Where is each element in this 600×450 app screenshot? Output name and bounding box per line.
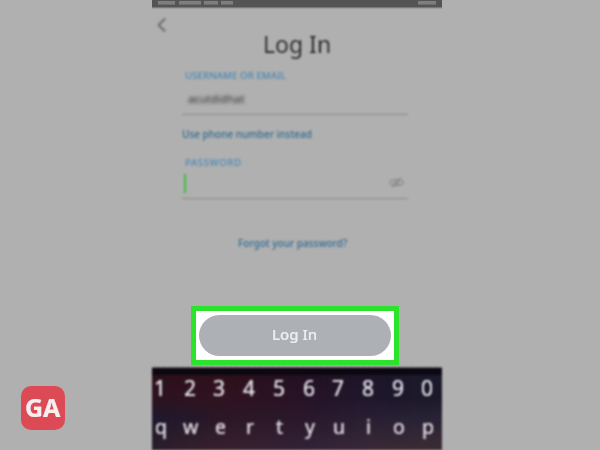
staticText: Log In: [272, 324, 318, 344]
button[interactable]: 0: [413, 370, 441, 407]
staticText: GA: [25, 390, 61, 424]
staticText: e: [215, 413, 226, 440]
button[interactable]: Forgot your password?: [238, 236, 348, 250]
button[interactable]: o: [385, 407, 413, 445]
button[interactable]: w: [177, 407, 205, 445]
button[interactable]: 1: [146, 370, 174, 407]
staticText: t: [276, 413, 284, 440]
button[interactable]: 6: [295, 370, 323, 407]
button[interactable]: p: [414, 407, 442, 445]
staticText: 8: [362, 374, 375, 403]
button[interactable]: i: [355, 407, 383, 445]
staticText: i: [366, 413, 372, 440]
button[interactable]: 3: [205, 370, 233, 407]
button[interactable]: Log In: [199, 315, 391, 356]
staticText: 9: [392, 374, 405, 403]
button[interactable]: u: [325, 407, 353, 445]
button[interactable]: 8: [354, 370, 382, 407]
staticText: 2: [184, 374, 197, 403]
button[interactable]: 7: [324, 370, 352, 407]
button[interactable]: 5: [265, 370, 293, 407]
staticText: q: [155, 413, 167, 440]
staticText: 6: [303, 374, 316, 403]
button[interactable]: Show password: [385, 171, 407, 193]
button[interactable]: 4: [235, 370, 263, 407]
button[interactable]: y: [296, 407, 324, 445]
staticText: acutdidhat: [188, 91, 245, 106]
staticText: 0: [421, 374, 434, 403]
staticText: w: [183, 413, 199, 440]
staticText: r: [246, 413, 255, 440]
staticText: 7: [332, 374, 345, 403]
button[interactable]: GA logo: [21, 386, 65, 430]
button[interactable]: r: [236, 407, 264, 445]
button[interactable]: Back: [150, 13, 174, 37]
staticText: o: [393, 413, 405, 440]
staticText: p: [422, 413, 434, 440]
staticText: u: [333, 413, 346, 440]
staticText: 3: [213, 374, 226, 403]
staticText: 4: [243, 374, 256, 403]
staticText: 1: [154, 374, 167, 403]
button[interactable]: 2: [176, 370, 204, 407]
button[interactable]: Use phone number instead: [182, 127, 312, 141]
button[interactable]: t: [266, 407, 294, 445]
button[interactable]: e: [206, 407, 234, 445]
staticText: USERNAME OR EMAIL: [185, 69, 286, 82]
button[interactable]: 9: [384, 370, 412, 407]
staticText: Log In: [263, 28, 332, 59]
button[interactable]: q: [147, 407, 175, 445]
staticText: 5: [273, 374, 286, 403]
staticText: y: [305, 413, 315, 440]
staticText: PASSWORD: [185, 156, 242, 169]
